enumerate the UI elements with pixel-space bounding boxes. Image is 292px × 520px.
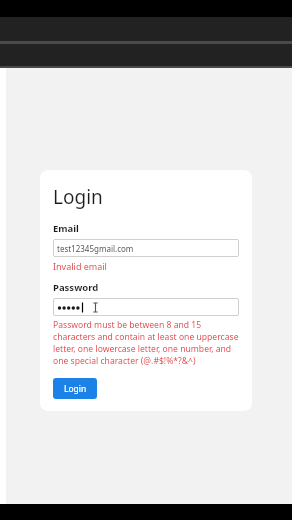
staticText: Login [64, 383, 87, 395]
button[interactable] [53, 298, 239, 316]
staticText: test12345gmail.com [57, 243, 134, 254]
staticText: Invalid email [53, 260, 107, 272]
button[interactable]: test12345gmail.com [53, 239, 239, 257]
staticText: Email [53, 222, 79, 235]
staticText: Login [53, 184, 103, 210]
button[interactable]: Login [53, 378, 97, 399]
staticText: Password must be between 8 and 15 charac… [53, 319, 239, 367]
staticText: Password [53, 281, 99, 294]
